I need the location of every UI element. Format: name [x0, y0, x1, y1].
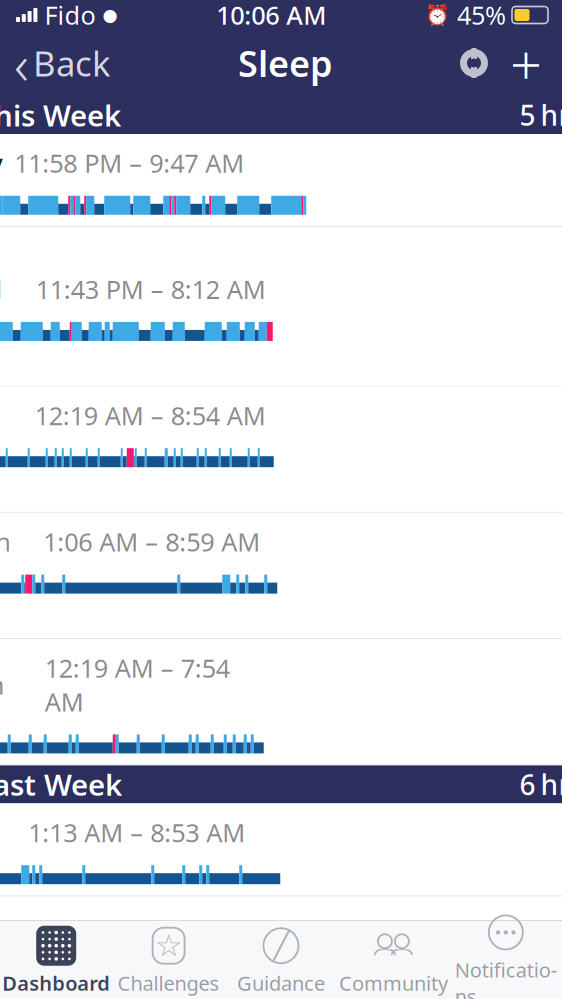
button[interactable]: Sat	[0, 803, 562, 930]
staticText: 12:19 AM – 8:54 AM	[35, 399, 266, 432]
button[interactable]: Sun	[0, 639, 562, 765]
staticText: Community	[339, 970, 448, 996]
staticText: ●	[102, 5, 117, 25]
staticText: Sun	[0, 668, 5, 702]
staticText: ‹	[14, 26, 29, 100]
button[interactable]: Notifications	[450, 904, 562, 999]
staticText: hr	[540, 96, 562, 134]
staticText: 11:58 PM – 9:47 AM	[14, 146, 244, 180]
staticText: 12:20 AM – 9:10 AM	[32, 942, 263, 975]
button[interactable]: Fri	[0, 930, 562, 999]
staticText: 5	[519, 96, 535, 134]
staticText: Back	[33, 40, 111, 86]
staticText: Challenges	[118, 970, 220, 996]
button[interactable]: Dashboard	[0, 918, 112, 999]
staticText: Last Week	[0, 765, 122, 804]
staticText: Today	[0, 146, 2, 180]
staticText: 12:19 AM – 7:54 AM	[45, 651, 230, 718]
staticText: Fido	[44, 0, 95, 32]
staticText: Notifications	[455, 956, 557, 999]
button[interactable]: Sleep settings	[450, 30, 498, 96]
staticText: Mon	[0, 525, 11, 559]
staticText: hr	[540, 766, 562, 803]
staticText: Wed	[0, 272, 3, 306]
staticText: 45%	[457, 0, 506, 32]
staticText: +	[510, 26, 542, 100]
button[interactable]: ╱	[225, 918, 337, 999]
button[interactable]: Log sleep	[498, 30, 554, 96]
staticText: ⏰	[425, 4, 450, 26]
button[interactable]: Today	[0, 134, 562, 260]
button[interactable]: Community	[337, 918, 450, 999]
button[interactable]: ☆	[112, 918, 225, 999]
staticText: 6	[519, 766, 535, 803]
button[interactable]: Mon	[0, 513, 562, 639]
staticText: 1:06 AM – 8:59 AM	[43, 525, 260, 559]
button[interactable]: Wed	[0, 260, 562, 387]
staticText: Guidance	[237, 970, 325, 996]
staticText: 11:43 PM – 8:12 AM	[36, 272, 266, 306]
staticText: Sleep	[238, 39, 333, 87]
button[interactable]: Tue	[0, 387, 562, 513]
staticText: ☆	[155, 928, 182, 963]
staticText: 10:06 AM	[216, 0, 326, 32]
staticText: 1:13 AM – 8:53 AM	[28, 815, 245, 849]
staticText: This Week	[0, 95, 121, 134]
staticText: Dashboard	[2, 970, 110, 996]
staticText: ╱	[273, 931, 289, 961]
button[interactable]: ‹	[0, 30, 121, 96]
